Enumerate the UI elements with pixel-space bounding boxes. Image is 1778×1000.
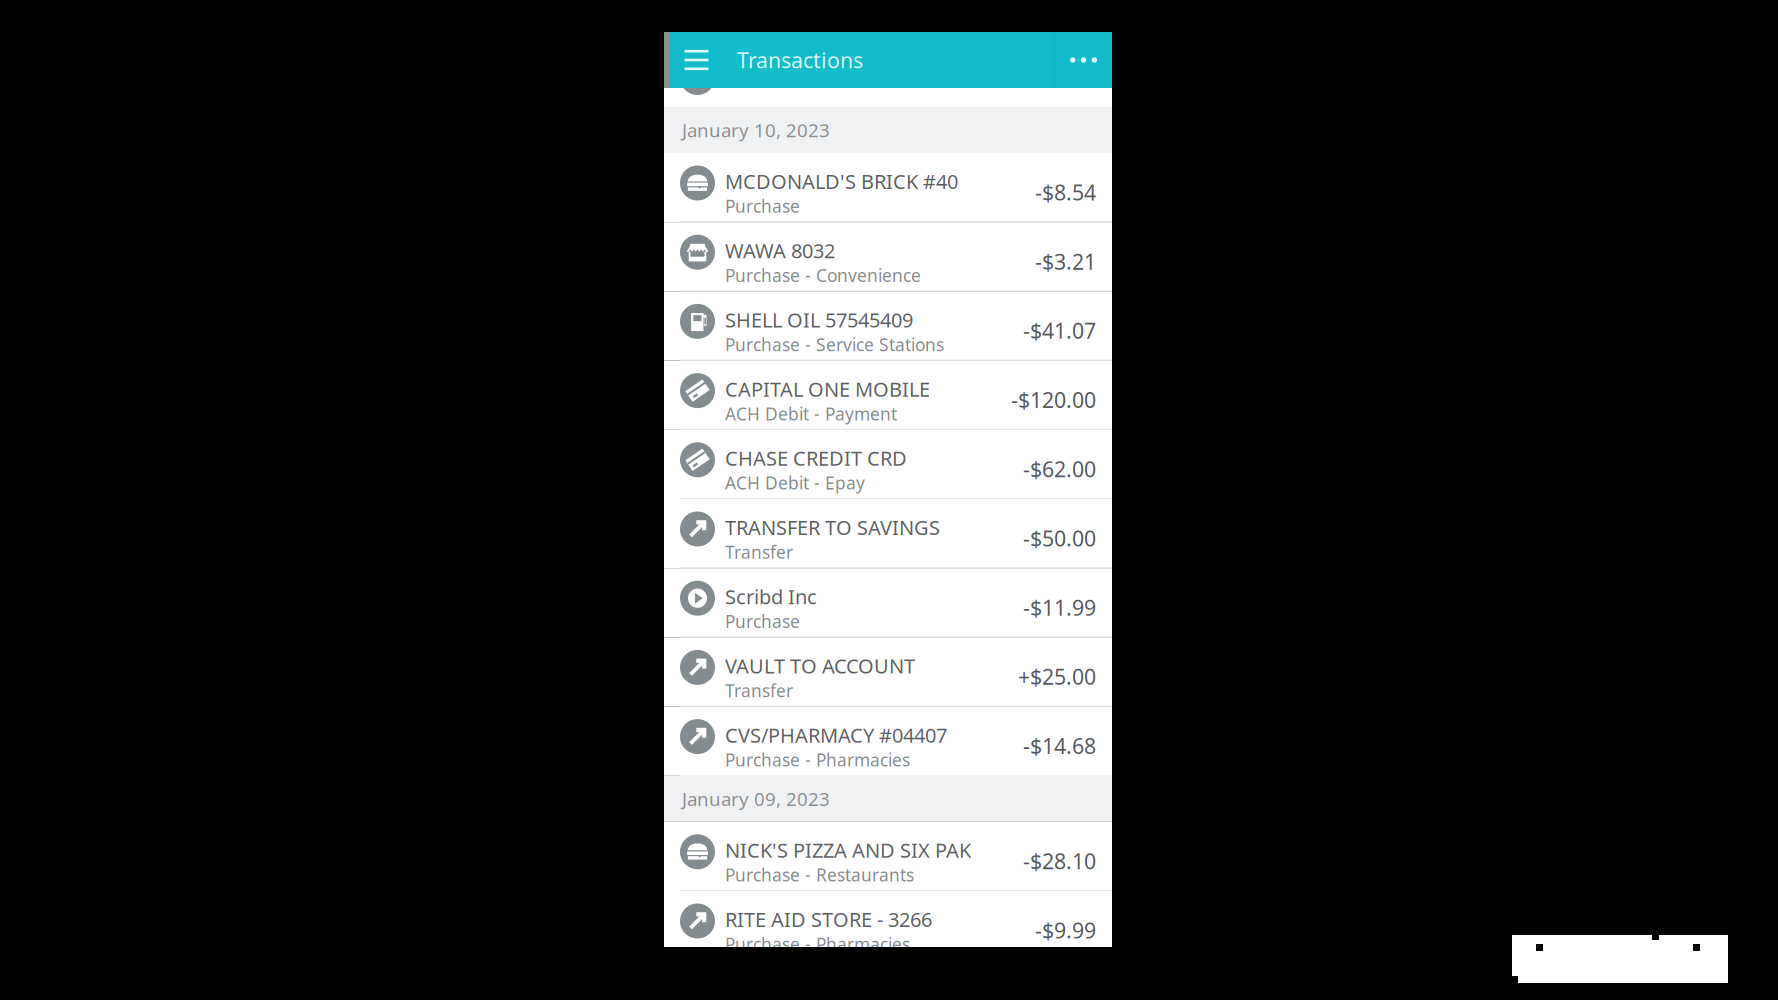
staticText: CVS/PHARMACY #04407 bbox=[725, 722, 947, 748]
button[interactable]: MCDONALD'S BRICK #40 bbox=[664, 153, 1112, 222]
staticText: -$62.00 bbox=[1023, 455, 1096, 483]
button[interactable]: NICK'S PIZZA AND SIX PAK bbox=[664, 822, 1112, 891]
staticText: Purchase - Restaurants bbox=[725, 863, 914, 886]
button[interactable]: CHASE CREDIT CRD bbox=[664, 430, 1112, 499]
staticText: Purchase bbox=[725, 195, 800, 218]
staticText: -$14.68 bbox=[1023, 732, 1096, 760]
staticText: January 09, 2023 bbox=[682, 786, 830, 811]
staticText: MCDONALD'S BRICK #40 bbox=[725, 168, 958, 195]
staticText: Purchase - Pharmacies bbox=[725, 748, 910, 771]
staticText: Transfer bbox=[725, 541, 793, 564]
staticText: Scribd Inc bbox=[725, 583, 817, 610]
staticText: VAULT TO ACCOUNT bbox=[725, 652, 915, 679]
staticText: TRANSFER TO SAVINGS bbox=[725, 514, 940, 541]
button[interactable]: WAWA 8032 bbox=[664, 222, 1112, 291]
staticText: Purchase bbox=[725, 610, 800, 633]
button[interactable]: VAULT TO ACCOUNT bbox=[664, 637, 1112, 707]
staticText: -$41.07 bbox=[1023, 316, 1096, 345]
staticText: ACH Debit - Payment bbox=[725, 402, 897, 425]
staticText: ACH Debit - Epay bbox=[725, 471, 865, 494]
staticText: Transactions bbox=[737, 46, 863, 74]
button[interactable]: RITE AID STORE - 3266 bbox=[664, 891, 1112, 960]
staticText: -$11.99 bbox=[1023, 593, 1096, 621]
staticText: +$25.00 bbox=[1018, 662, 1096, 691]
staticText: CHASE CREDIT CRD bbox=[725, 445, 907, 471]
staticText: Purchase - Service Stations bbox=[725, 333, 944, 356]
staticText: Transfer bbox=[725, 679, 793, 702]
button[interactable]: Menu bbox=[669, 32, 724, 88]
staticText: -$28.10 bbox=[1023, 847, 1096, 875]
staticText: SHELL OIL 57545409 bbox=[725, 306, 913, 333]
button[interactable]: More options bbox=[1055, 32, 1112, 88]
button[interactable]: CVS/PHARMACY #04407 bbox=[664, 707, 1112, 776]
button[interactable]: TRANSFER TO SAVINGS bbox=[664, 499, 1112, 568]
staticText: NICK'S PIZZA AND SIX PAK bbox=[725, 837, 971, 863]
button[interactable]: CAPITAL ONE MOBILE bbox=[664, 361, 1112, 430]
staticText: -$8.54 bbox=[1035, 178, 1096, 206]
button[interactable]: Scribd Inc bbox=[664, 568, 1112, 637]
staticText: RITE AID STORE - 3266 bbox=[725, 906, 932, 933]
staticText: WAWA 8032 bbox=[725, 237, 835, 264]
staticText: Purchase - Pharmacies bbox=[725, 933, 910, 956]
staticText: CAPITAL ONE MOBILE bbox=[725, 376, 930, 402]
staticText: -$3.21 bbox=[1035, 247, 1096, 275]
staticText: -$9.99 bbox=[1035, 916, 1096, 944]
button[interactable]: SHELL OIL 57545409 bbox=[664, 291, 1112, 361]
staticText: -$120.00 bbox=[1011, 386, 1096, 414]
staticText: January 10, 2023 bbox=[682, 118, 830, 142]
staticText: Purchase - Convenience bbox=[725, 264, 921, 287]
staticText: -$50.00 bbox=[1023, 524, 1096, 552]
